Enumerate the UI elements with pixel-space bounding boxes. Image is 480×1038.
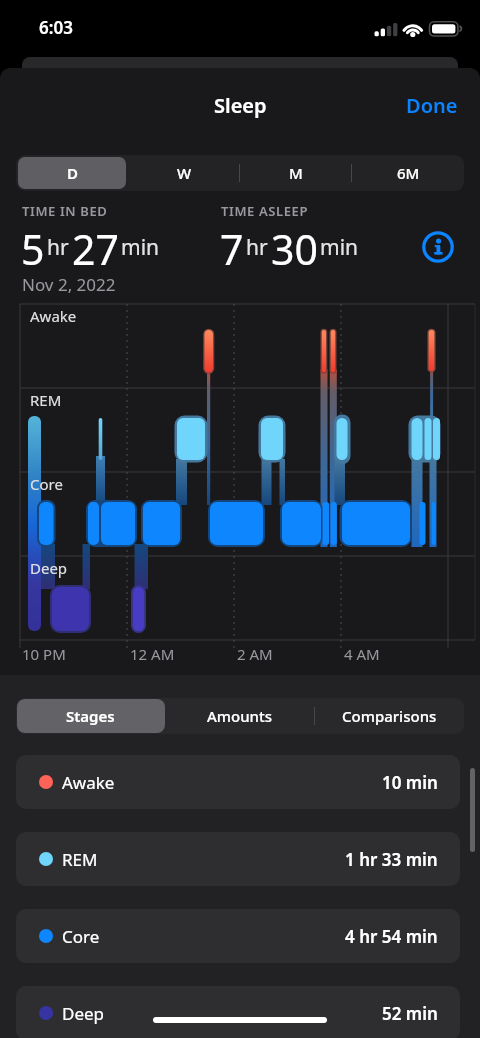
staticText: 1 hr 33 min (345, 848, 438, 871)
staticText: Core (30, 474, 63, 494)
staticText: min (320, 233, 359, 262)
staticText: min (121, 233, 160, 262)
staticText: hr (47, 233, 69, 262)
staticText: 5 (21, 221, 45, 267)
button[interactable]: Comparisons (314, 698, 464, 734)
button[interactable]: Deep (16, 986, 460, 1038)
staticText: Amounts (207, 706, 273, 726)
staticText: 7 (220, 221, 244, 267)
staticText: Stages (66, 706, 115, 726)
button[interactable]: 6M (352, 155, 464, 191)
staticText: Awake (62, 771, 115, 794)
staticText: 2 AM (237, 644, 273, 664)
staticText: 4 hr 54 min (345, 925, 438, 948)
staticText: M (289, 163, 303, 183)
button[interactable]: Amounts (165, 698, 314, 734)
staticText: D (67, 163, 78, 183)
staticText: W (177, 163, 192, 183)
button[interactable]: M (240, 155, 352, 191)
staticText: Done (406, 92, 458, 119)
button[interactable]: W (128, 155, 240, 191)
staticText: Core (62, 925, 100, 948)
staticText: Comparisons (342, 706, 437, 726)
staticText: 10 PM (22, 644, 66, 664)
button[interactable] (422, 231, 454, 263)
button[interactable]: REM (16, 832, 460, 886)
button[interactable]: Core (16, 909, 460, 963)
staticText: 10 min (382, 771, 438, 794)
button[interactable]: D (16, 155, 128, 191)
staticText: 4 AM (344, 644, 380, 664)
staticText: Awake (30, 306, 77, 326)
staticText: TIME IN BED (22, 202, 108, 220)
button[interactable]: Done (380, 92, 458, 119)
button[interactable]: Awake (16, 755, 460, 809)
staticText: 52 min (382, 1002, 438, 1025)
staticText: 6M (397, 163, 420, 183)
staticText: 12 AM (130, 644, 175, 664)
button[interactable]: Stages (16, 698, 165, 734)
staticText: REM (30, 390, 62, 410)
staticText: Deep (62, 1002, 105, 1025)
staticText: Deep (30, 558, 68, 578)
staticText: Nov 2, 2022 (22, 273, 116, 296)
staticText: 6:03 (39, 16, 73, 39)
staticText: Sleep (214, 92, 267, 119)
staticText: 27 (72, 221, 119, 267)
staticText: REM (62, 848, 98, 871)
staticText: 30 (271, 221, 318, 267)
staticText: TIME ASLEEP (221, 202, 309, 220)
staticText: hr (246, 233, 268, 262)
